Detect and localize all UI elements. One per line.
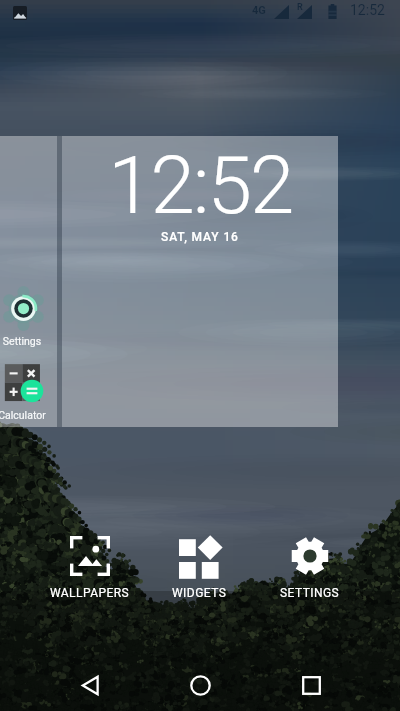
button[interactable]: Home <box>176 661 224 709</box>
button[interactable]: 12:52 <box>62 136 338 427</box>
button[interactable]: WALLPAPERS <box>35 528 145 600</box>
staticText: 4G <box>252 4 266 17</box>
staticText: 12:52 <box>108 139 293 233</box>
button[interactable]: Settings app <box>0 285 78 351</box>
staticText: R <box>297 2 303 13</box>
staticText: Calculator <box>0 409 72 421</box>
button[interactable]: WIDGETS <box>144 528 254 600</box>
staticText: WIDGETS <box>172 586 227 600</box>
button[interactable]: SETTINGS <box>255 528 365 600</box>
staticText: WALLPAPERS <box>50 586 130 600</box>
staticText: SAT, MAY 16 <box>161 230 239 244</box>
button[interactable]: Calculator app <box>0 360 78 424</box>
button[interactable]: Recents <box>287 661 335 709</box>
button[interactable]: Back <box>65 661 113 709</box>
staticText: SETTINGS <box>280 586 340 600</box>
staticText: Settings <box>0 335 72 347</box>
staticText: 12:52 <box>350 2 385 18</box>
